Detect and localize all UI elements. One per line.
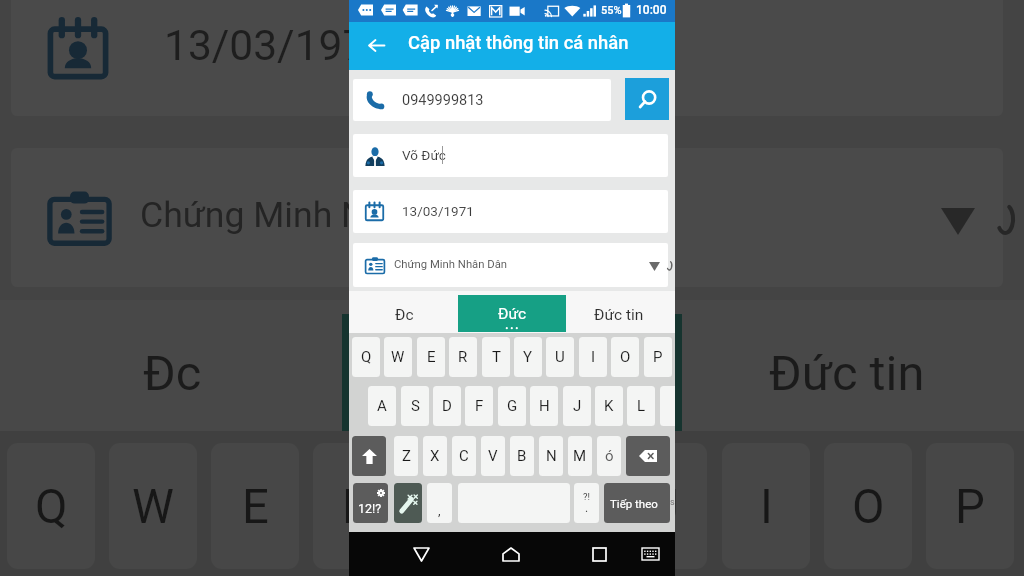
staticText: I <box>591 348 596 366</box>
button[interactable]: Đức <box>458 295 566 332</box>
button[interactable]: U <box>619 443 707 569</box>
button[interactable]: E <box>417 337 445 377</box>
button[interactable]: Shift <box>352 436 386 476</box>
staticText: O <box>620 348 631 366</box>
button[interactable]: O <box>611 337 639 377</box>
button[interactable]: Back <box>352 26 396 66</box>
staticText: X <box>430 447 440 465</box>
staticText: P <box>653 348 663 366</box>
staticText: C <box>459 447 469 465</box>
staticText: P <box>955 479 985 534</box>
button[interactable]: Y <box>514 337 542 377</box>
staticText: 13/03/1971 <box>402 203 474 219</box>
button[interactable] <box>353 79 611 121</box>
staticText: N <box>546 447 557 465</box>
button[interactable]: U <box>546 337 574 377</box>
button[interactable]: D <box>433 386 461 426</box>
button[interactable]: , <box>427 483 452 523</box>
staticText: Y <box>547 479 576 534</box>
button[interactable]: T <box>482 337 510 377</box>
button[interactable]: Y <box>517 443 605 569</box>
button[interactable]: I <box>722 443 810 569</box>
button[interactable]: R <box>313 443 401 569</box>
button[interactable]: G <box>498 386 526 426</box>
staticText: Đức tin <box>594 306 644 324</box>
button[interactable]: I <box>579 337 607 377</box>
button[interactable] <box>353 243 668 287</box>
button[interactable] <box>353 134 668 177</box>
button[interactable]: Symbols <box>353 483 388 523</box>
button[interactable]: Back <box>399 539 443 569</box>
button[interactable]: Z <box>394 436 418 476</box>
staticText: B <box>517 447 527 465</box>
staticText: Q <box>35 479 68 534</box>
staticText: F <box>475 397 484 415</box>
button[interactable]: Đức <box>342 314 682 431</box>
button[interactable]: P <box>644 337 672 377</box>
staticText: H <box>539 397 550 415</box>
button[interactable]: Q <box>352 337 380 377</box>
button[interactable]: B <box>510 436 534 476</box>
button[interactable]: M <box>568 436 592 476</box>
staticText: U <box>648 479 679 534</box>
staticText: Z <box>402 447 411 465</box>
staticText: R <box>342 479 372 534</box>
button[interactable] <box>11 148 1003 287</box>
button[interactable]: K <box>595 386 623 426</box>
button[interactable]: Assist <box>394 483 422 523</box>
button[interactable]: O <box>824 443 912 569</box>
button[interactable]: Đc <box>351 296 458 333</box>
staticText: . <box>585 501 589 515</box>
button[interactable]: J <box>563 386 591 426</box>
button[interactable]: X <box>423 436 447 476</box>
staticText: D <box>442 397 452 415</box>
staticText: Y <box>523 348 533 366</box>
staticText: A <box>377 397 387 415</box>
button[interactable]: W <box>384 337 412 377</box>
button[interactable]: W <box>109 443 197 569</box>
button[interactable] <box>11 0 1003 116</box>
button[interactable]: V <box>481 436 505 476</box>
staticText: U <box>555 348 565 366</box>
button[interactable]: Đức tin <box>565 296 672 333</box>
button[interactable]: A <box>368 386 396 426</box>
button[interactable] <box>353 190 668 233</box>
staticText: 13/03/1971 <box>164 21 391 71</box>
button[interactable]: L <box>627 386 655 426</box>
staticText: S <box>411 397 420 415</box>
button[interactable]: ?! <box>574 483 599 523</box>
staticText: W <box>391 348 405 366</box>
button[interactable]: N <box>539 436 563 476</box>
button[interactable]: Đc <box>4 315 341 432</box>
button[interactable]: Đức tin <box>678 315 1015 432</box>
button[interactable]: ó <box>597 436 621 476</box>
button[interactable]: Keyboard <box>633 539 667 569</box>
staticText: R <box>458 348 468 366</box>
button[interactable]: H <box>530 386 558 426</box>
button[interactable]: Home <box>489 539 533 569</box>
button[interactable]: F <box>465 386 493 426</box>
staticText: , <box>438 503 441 518</box>
button[interactable]: P <box>926 443 1014 569</box>
staticText: E <box>427 348 436 366</box>
staticText: J <box>573 397 582 415</box>
staticText: V <box>488 447 498 465</box>
staticText: 0949999813 <box>402 92 484 109</box>
button[interactable]: Tiếp theo <box>604 483 670 523</box>
button[interactable]: R <box>449 337 477 377</box>
button[interactable]: T <box>415 443 503 569</box>
button[interactable]: Recent apps <box>577 539 621 569</box>
staticText: K <box>604 397 614 415</box>
button[interactable]: E <box>211 443 299 569</box>
staticText: Đc <box>395 306 414 324</box>
staticText: 55% <box>601 4 622 17</box>
button[interactable]: S <box>401 386 429 426</box>
button[interactable]: C <box>452 436 476 476</box>
staticText: Đức <box>498 305 527 323</box>
button[interactable]: Q <box>7 443 95 569</box>
button[interactable]: Search <box>625 78 669 120</box>
button[interactable]: Backspace <box>626 436 670 476</box>
staticText: ?! <box>583 491 590 502</box>
